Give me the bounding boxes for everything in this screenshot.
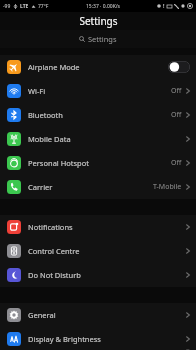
button[interactable]: Personal Hotspot (0, 151, 196, 175)
button[interactable]: Search settings (0, 30, 196, 48)
staticText: Do Not Disturb (28, 270, 81, 280)
staticText: Mobile Data (28, 134, 71, 144)
button[interactable]: Do Not Disturb (0, 263, 196, 287)
staticText: Off (171, 110, 182, 120)
staticText: Bluetooth (28, 110, 63, 120)
button[interactable]: General (0, 303, 196, 327)
staticText: Notifications (28, 222, 73, 232)
staticText: Airplane Mode (28, 62, 80, 72)
staticText: 77°F (38, 3, 49, 10)
staticText: T-Mobile (153, 182, 182, 192)
button[interactable]: Carrier (0, 175, 196, 199)
staticText: Display & Brightness (28, 334, 101, 344)
button[interactable]: Airplane Mode toggle (168, 61, 190, 73)
staticText: Carrier (28, 182, 53, 192)
button[interactable]: Control Centre (0, 239, 196, 263)
staticText: Settings (88, 34, 117, 44)
staticText: Wi-Fi (28, 86, 46, 96)
staticText: Personal Hotspot (28, 158, 89, 168)
staticText: Off (171, 86, 182, 96)
staticText: ! (163, 3, 165, 10)
staticText: -99 (3, 3, 11, 10)
button[interactable]: Display & Brightness (0, 327, 196, 350)
button[interactable]: Airplane Mode (0, 55, 196, 79)
staticText: Control Centre (28, 246, 80, 256)
button[interactable]: Mobile Data (0, 127, 196, 151)
button[interactable]: Notifications (0, 215, 196, 239)
staticText: 15:37 · 0.00K/s (86, 3, 120, 10)
staticText: LTE (20, 3, 29, 10)
button[interactable]: Bluetooth (0, 103, 196, 127)
staticText: Settings (79, 14, 118, 28)
staticText: General (28, 310, 56, 320)
staticText: Off (171, 158, 182, 168)
button[interactable]: Wi-Fi (0, 79, 196, 103)
